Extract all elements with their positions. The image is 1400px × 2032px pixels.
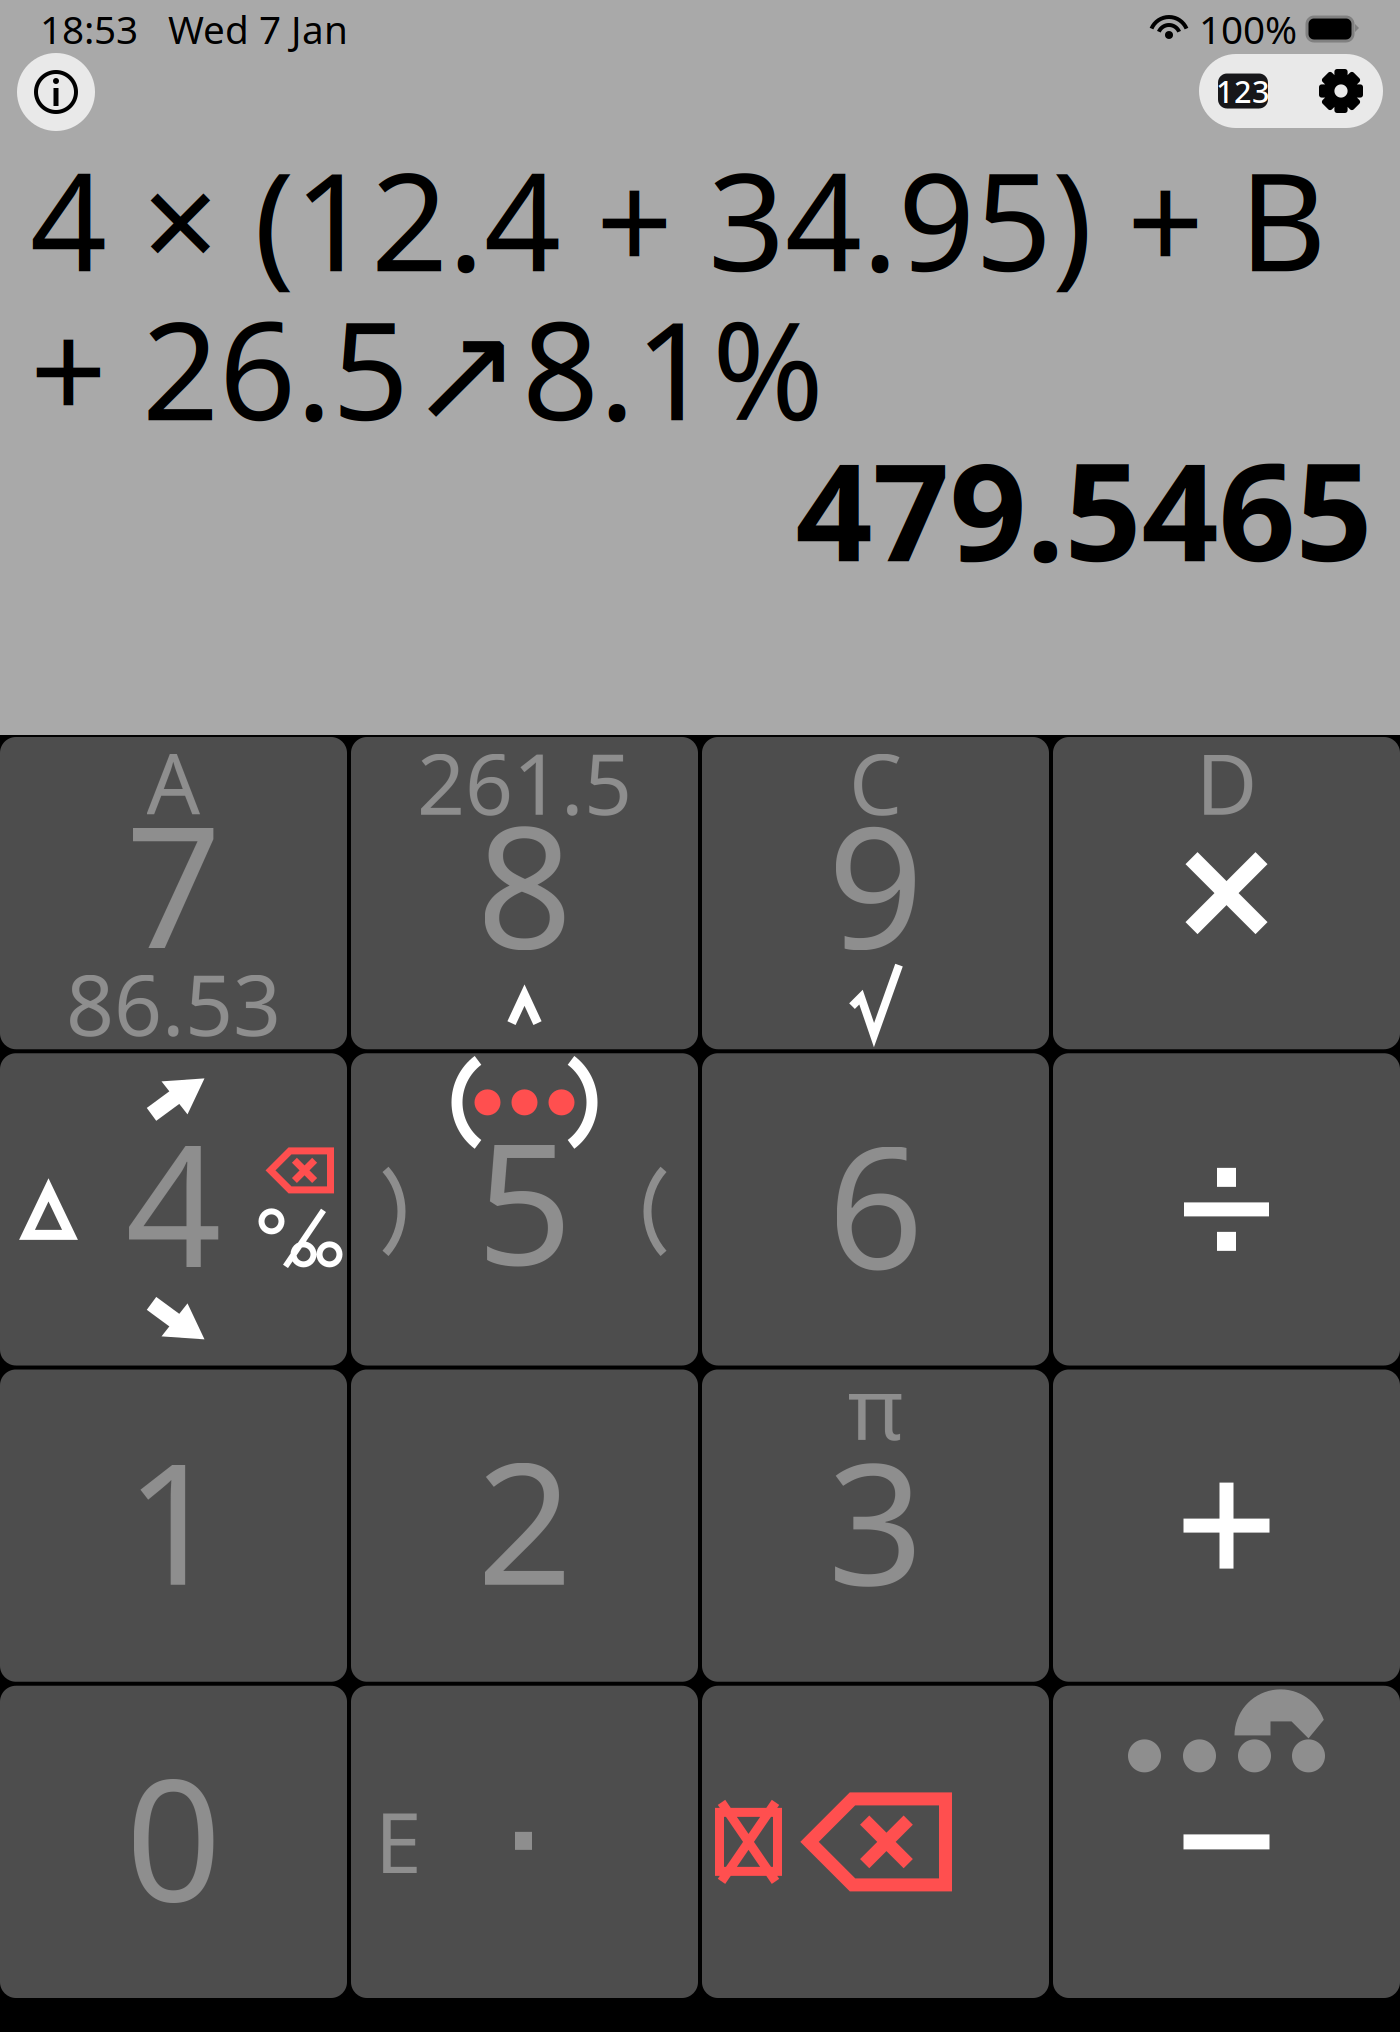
- button[interactable]: Info: [17, 53, 95, 131]
- staticText: C: [849, 726, 902, 838]
- staticText: 0: [125, 1724, 221, 1947]
- staticText: 3: [827, 1408, 923, 1631]
- staticText: π: [847, 1350, 903, 1463]
- button[interactable]: 0: [0, 1686, 347, 1998]
- staticText: 7: [125, 772, 221, 995]
- staticText: 6: [827, 1092, 923, 1315]
- button[interactable]: C: [702, 737, 1049, 1049]
- button[interactable]: Number pad: [1213, 71, 1273, 111]
- staticText: 1: [125, 1408, 221, 1631]
- staticText: 8: [476, 772, 572, 995]
- staticText: 5: [476, 1088, 572, 1311]
- staticText: + 26.5↗8.1%: [30, 279, 824, 457]
- staticText: 9: [827, 772, 923, 995]
- staticText: E: [375, 1785, 422, 1897]
- staticText: 4 × (12.4 + 34.95) + B: [30, 130, 1327, 308]
- staticText: A: [146, 726, 200, 838]
- staticText: 2: [476, 1408, 572, 1631]
- button[interactable]: 1: [0, 1369, 347, 1682]
- button[interactable]: 5: [351, 1053, 698, 1365]
- staticText: 4: [125, 1090, 221, 1313]
- button[interactable]: E: [351, 1686, 698, 1998]
- button[interactable]: Settings: [1319, 69, 1363, 113]
- staticText: 123: [1216, 71, 1270, 111]
- button[interactable]: A: [0, 737, 347, 1049]
- staticText: 261.5: [417, 726, 632, 838]
- button[interactable]: 6: [702, 1053, 1049, 1365]
- button[interactable]: D: [1053, 737, 1400, 1049]
- button[interactable]: [702, 1686, 1049, 1998]
- button[interactable]: 4: [0, 1053, 347, 1365]
- staticText: 86.53: [66, 947, 281, 1059]
- button[interactable]: 261.5: [351, 737, 698, 1049]
- button[interactable]: [1053, 1686, 1400, 1998]
- button[interactable]: [1053, 1369, 1400, 1682]
- staticText: 18:53 Wed 7 Jan: [40, 3, 348, 55]
- staticText: 100%: [1189, 3, 1307, 55]
- button[interactable]: [1053, 1053, 1400, 1365]
- button[interactable]: 2: [351, 1369, 698, 1682]
- staticText: D: [1196, 726, 1257, 838]
- button[interactable]: π: [702, 1369, 1049, 1682]
- staticText: 479.5465: [795, 420, 1372, 598]
